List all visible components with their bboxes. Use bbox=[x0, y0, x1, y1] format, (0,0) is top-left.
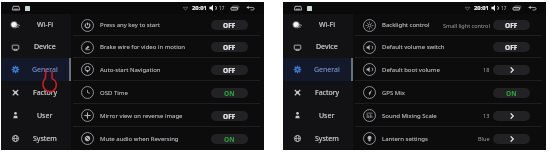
button[interactable]: Device bbox=[1, 36, 71, 58]
staticText: OFF bbox=[223, 21, 236, 30]
button[interactable]: ON bbox=[493, 88, 530, 98]
button[interactable]: Default volume switch bbox=[353, 36, 546, 58]
button[interactable]: Mute audio when Reversing bbox=[71, 127, 264, 150]
button[interactable]: OFF bbox=[211, 111, 248, 121]
staticText: Default boot volume bbox=[382, 66, 440, 74]
button[interactable]: Back bbox=[246, 3, 256, 13]
button[interactable]: Press any key to start bbox=[71, 14, 264, 36]
staticText: Mirror view on reverse image bbox=[100, 112, 183, 120]
other: Open bbox=[508, 66, 516, 74]
staticText: Sound Mixing Scale bbox=[382, 112, 437, 120]
button[interactable]: Open bbox=[493, 65, 530, 75]
staticText: Lantern settings bbox=[382, 135, 428, 143]
staticText: OFF bbox=[223, 66, 236, 75]
button[interactable]: Recent apps bbox=[512, 3, 522, 13]
staticText: OFF bbox=[505, 43, 518, 52]
staticText: Wi-Fi bbox=[37, 20, 54, 30]
other: Open bbox=[508, 135, 516, 143]
button[interactable]: GPS Mix bbox=[353, 81, 546, 104]
button[interactable]: Device bbox=[283, 36, 353, 58]
button[interactable]: System bbox=[1, 127, 71, 150]
staticText: OFF bbox=[223, 43, 236, 52]
staticText: Brake wire for video in motion bbox=[100, 43, 186, 51]
button[interactable]: Factory bbox=[283, 81, 353, 104]
staticText: System bbox=[315, 134, 339, 144]
button[interactable]: Home bbox=[11, 3, 21, 13]
button[interactable]: Sound Mixing Scale bbox=[353, 104, 546, 127]
staticText: 18 bbox=[483, 66, 490, 73]
button[interactable]: OFF bbox=[211, 20, 248, 30]
button[interactable]: User bbox=[283, 104, 353, 127]
staticText: OFF bbox=[505, 21, 518, 30]
button[interactable]: Factory bbox=[1, 81, 71, 104]
button[interactable]: OFF bbox=[211, 42, 248, 52]
staticText: Default volume switch bbox=[382, 43, 445, 51]
staticText: ON bbox=[506, 89, 517, 98]
staticText: Small light control bbox=[443, 22, 490, 29]
staticText: 17 bbox=[501, 5, 507, 11]
staticText: Wi-Fi bbox=[319, 20, 336, 30]
staticText: ON bbox=[224, 89, 235, 98]
staticText: General bbox=[32, 65, 58, 75]
button[interactable]: Default boot volume bbox=[353, 58, 546, 81]
button[interactable]: Recent apps bbox=[230, 3, 240, 13]
staticText: GPS Mix bbox=[382, 89, 406, 97]
staticText: Press any key to start bbox=[100, 21, 160, 29]
staticText: OFF bbox=[223, 112, 236, 121]
staticText: Factory bbox=[315, 88, 340, 98]
button[interactable]: OFF bbox=[211, 65, 248, 75]
button[interactable]: ON bbox=[211, 88, 248, 98]
button[interactable]: Back bbox=[528, 3, 538, 13]
staticText: Device bbox=[34, 42, 56, 52]
staticText: Backlight control bbox=[382, 21, 430, 29]
button[interactable]: OSD Time bbox=[71, 81, 264, 104]
button[interactable]: Auto-start Navigation bbox=[71, 58, 264, 81]
staticText: General bbox=[314, 65, 340, 75]
button[interactable]: Lantern settings bbox=[353, 127, 546, 150]
other: Open bbox=[508, 112, 516, 120]
button[interactable]: Wi-Fi bbox=[1, 14, 71, 36]
button[interactable]: OFF bbox=[493, 20, 530, 30]
button[interactable]: Home bbox=[293, 3, 303, 13]
staticText: 20:01 bbox=[192, 4, 207, 12]
button[interactable]: System bbox=[283, 127, 353, 150]
staticText: User bbox=[37, 111, 53, 121]
staticText: System bbox=[33, 134, 57, 144]
staticText: 20:01 bbox=[474, 4, 489, 12]
staticText: Factory bbox=[33, 88, 58, 98]
button[interactable]: Brake wire for video in motion bbox=[71, 36, 264, 58]
button[interactable]: General bbox=[1, 58, 71, 81]
button[interactable]: ON bbox=[211, 134, 248, 144]
button[interactable]: User bbox=[1, 104, 71, 127]
button[interactable]: Wi-Fi bbox=[283, 14, 353, 36]
staticText: 17 bbox=[219, 5, 225, 11]
staticText: OSD Time bbox=[100, 89, 128, 97]
button[interactable]: Backlight control bbox=[353, 14, 546, 36]
staticText: Device bbox=[316, 42, 338, 52]
button[interactable]: OFF bbox=[493, 42, 530, 52]
button[interactable]: Open bbox=[493, 134, 530, 144]
staticText: Auto-start Navigation bbox=[100, 66, 161, 74]
staticText: Blue bbox=[478, 135, 490, 142]
staticText: User bbox=[319, 111, 335, 121]
staticText: 13 bbox=[483, 112, 490, 119]
staticText: Mute audio when Reversing bbox=[100, 135, 179, 143]
staticText: ON bbox=[224, 135, 235, 144]
button[interactable]: Open bbox=[493, 111, 530, 121]
button[interactable]: General bbox=[283, 58, 353, 81]
button[interactable]: Mirror view on reverse image bbox=[71, 104, 264, 127]
